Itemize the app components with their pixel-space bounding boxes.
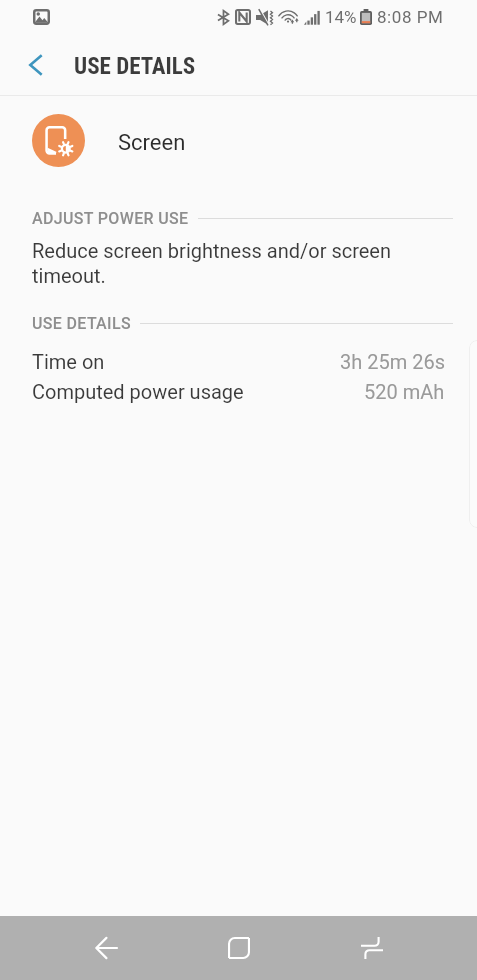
staticText: Computed power usage xyxy=(32,380,244,403)
staticText: USE DETAILS xyxy=(32,314,131,333)
staticText: 8:08 PM xyxy=(377,7,444,27)
staticText: ADJUST POWER USE xyxy=(32,209,189,228)
staticText: Reduce screen brightness and/or screen t… xyxy=(32,239,392,288)
staticText: USE DETAILS xyxy=(74,53,196,80)
button[interactable]: Computed power usage xyxy=(32,380,445,403)
button[interactable]: Time on xyxy=(32,350,445,373)
button[interactable]: Recents xyxy=(340,916,404,980)
button[interactable]: Home xyxy=(207,916,271,980)
staticText: Time on xyxy=(32,350,105,373)
button[interactable]: Screen xyxy=(32,114,453,167)
button[interactable]: Navigate up xyxy=(13,42,59,88)
staticText: 520 mAh xyxy=(364,380,445,403)
staticText: Screen xyxy=(118,130,186,156)
staticText: 14% xyxy=(325,7,357,27)
staticText: 3h 25m 26s xyxy=(340,350,445,373)
button[interactable]: Back xyxy=(74,916,138,980)
